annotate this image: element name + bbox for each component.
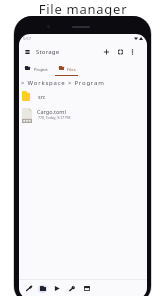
- staticText: > Workspace > Program: [21, 79, 105, 87]
- button[interactable]: Select all: [114, 44, 127, 60]
- staticText: Files: [67, 67, 76, 73]
- button[interactable]: Add: [100, 44, 113, 60]
- staticText: 5:57: [23, 36, 31, 41]
- button[interactable]: Project: [21, 62, 53, 78]
- staticText: Project: [34, 67, 48, 73]
- button[interactable]: src: [19, 87, 147, 104]
- button[interactable]: Cargo.toml: [19, 104, 147, 124]
- staticText: Cargo.toml: [37, 108, 66, 115]
- staticText: 778, Today, 9:37 PM: [38, 115, 71, 120]
- button[interactable]: Files: [55, 62, 87, 78]
- button[interactable]: Terminal: [80, 282, 93, 295]
- button[interactable]: More options: [126, 44, 139, 60]
- button[interactable]: Files: [36, 282, 49, 295]
- button[interactable]: Edit: [22, 282, 35, 295]
- button[interactable]: Run: [50, 282, 63, 295]
- staticText: Storage: [36, 48, 60, 56]
- button[interactable]: Open navigation menu: [21, 44, 34, 60]
- staticText: File manager: [0, 0, 166, 18]
- button[interactable]: Build: [65, 282, 78, 295]
- staticText: src: [38, 93, 46, 100]
